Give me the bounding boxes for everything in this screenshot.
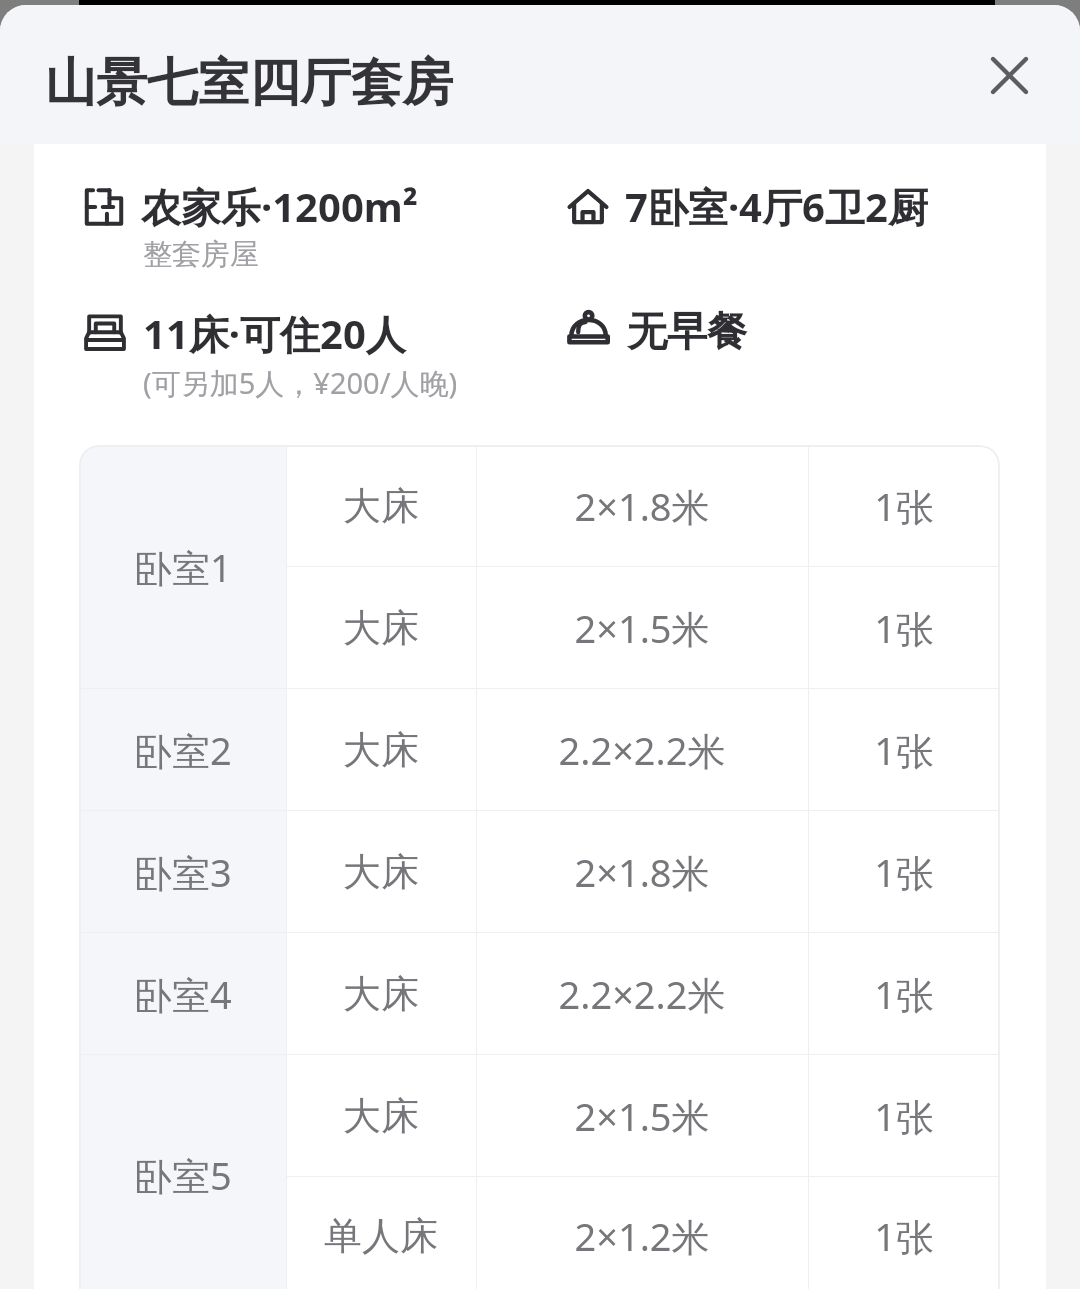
staticText: 大床 — [343, 726, 419, 774]
staticText: 2.2×2.2米 — [558, 724, 726, 776]
button[interactable]: 关闭 — [979, 45, 1040, 106]
staticText: 山景七室四厅套房 — [45, 51, 453, 115]
staticText: 卧室2 — [134, 724, 232, 776]
staticText: 2.2×2.2米 — [558, 968, 726, 1020]
staticText: 11床·可住20人 — [143, 306, 406, 361]
staticText: 大床 — [343, 970, 419, 1018]
staticText: 单人床 — [324, 1212, 438, 1260]
staticText: 大床 — [343, 848, 419, 896]
staticText: 1张 — [874, 602, 934, 654]
staticText: 2×1.8米 — [574, 846, 710, 898]
staticText: 1张 — [874, 1090, 934, 1142]
staticText: 2×1.8米 — [574, 480, 710, 532]
staticText: 整套房屋 — [143, 236, 259, 273]
staticText: 大床 — [343, 1092, 419, 1140]
staticText: 大床 — [343, 482, 419, 530]
staticText: 1张 — [874, 968, 934, 1020]
staticText: 2×1.5米 — [574, 1090, 710, 1142]
staticText: 1张 — [874, 480, 934, 532]
staticText: 卧室5 — [134, 1149, 232, 1201]
staticText: 卧室4 — [134, 968, 232, 1020]
staticText: 7卧室·4厅6卫2厨 — [625, 179, 928, 234]
staticText: 1张 — [874, 1210, 934, 1262]
staticText: 1张 — [874, 724, 934, 776]
staticText: 无早餐 — [627, 306, 747, 356]
staticText: 卧室3 — [134, 846, 232, 898]
staticText: 卧室1 — [134, 541, 232, 593]
staticText: 大床 — [343, 604, 419, 652]
staticText: 2×1.5米 — [574, 602, 710, 654]
staticText: (可另加5人，¥200/人晚) — [143, 363, 458, 403]
staticText: 1张 — [874, 846, 934, 898]
staticText: 农家乐·1200m² — [141, 179, 418, 234]
staticText: 2×1.2米 — [574, 1210, 710, 1262]
